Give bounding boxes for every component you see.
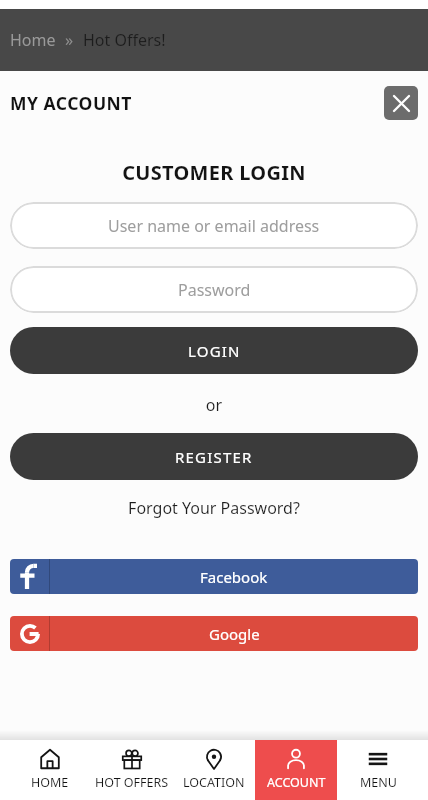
staticText: Hot Offers!	[83, 29, 166, 51]
button[interactable]: User name or email address	[10, 202, 418, 249]
button[interactable]: LOGIN	[10, 327, 418, 374]
staticText: HOT OFFERS	[95, 774, 169, 791]
button[interactable]: ACCOUNT	[255, 740, 337, 800]
staticText: Password	[178, 279, 251, 301]
button[interactable]: Facebook	[10, 559, 418, 594]
staticText: MENU	[360, 774, 397, 791]
staticText: or	[0, 394, 428, 416]
staticText: LOGIN	[188, 341, 241, 361]
staticText: REGISTER	[175, 447, 253, 467]
button[interactable]: Forgot Your Password?	[0, 497, 428, 519]
button[interactable]	[384, 86, 418, 120]
button[interactable]: Google	[10, 616, 418, 651]
staticText: ACCOUNT	[267, 774, 326, 791]
button[interactable]: Home	[10, 29, 56, 51]
button[interactable]: HOT OFFERS	[91, 740, 173, 800]
staticText: LOCATION	[183, 774, 245, 791]
button[interactable]: REGISTER	[10, 433, 418, 480]
button[interactable]: LOCATION	[173, 740, 255, 800]
staticText: Google	[209, 624, 260, 644]
staticText: »	[65, 29, 74, 51]
button[interactable]: MENU	[337, 740, 419, 800]
staticText: CUSTOMER LOGIN	[0, 159, 428, 186]
staticText: MY ACCOUNT	[10, 91, 132, 115]
staticText: HOME	[31, 774, 69, 791]
button[interactable]: Password	[10, 266, 418, 313]
button[interactable]: HOME	[9, 740, 91, 800]
staticText: User name or email address	[108, 215, 320, 237]
staticText: Facebook	[200, 567, 268, 587]
